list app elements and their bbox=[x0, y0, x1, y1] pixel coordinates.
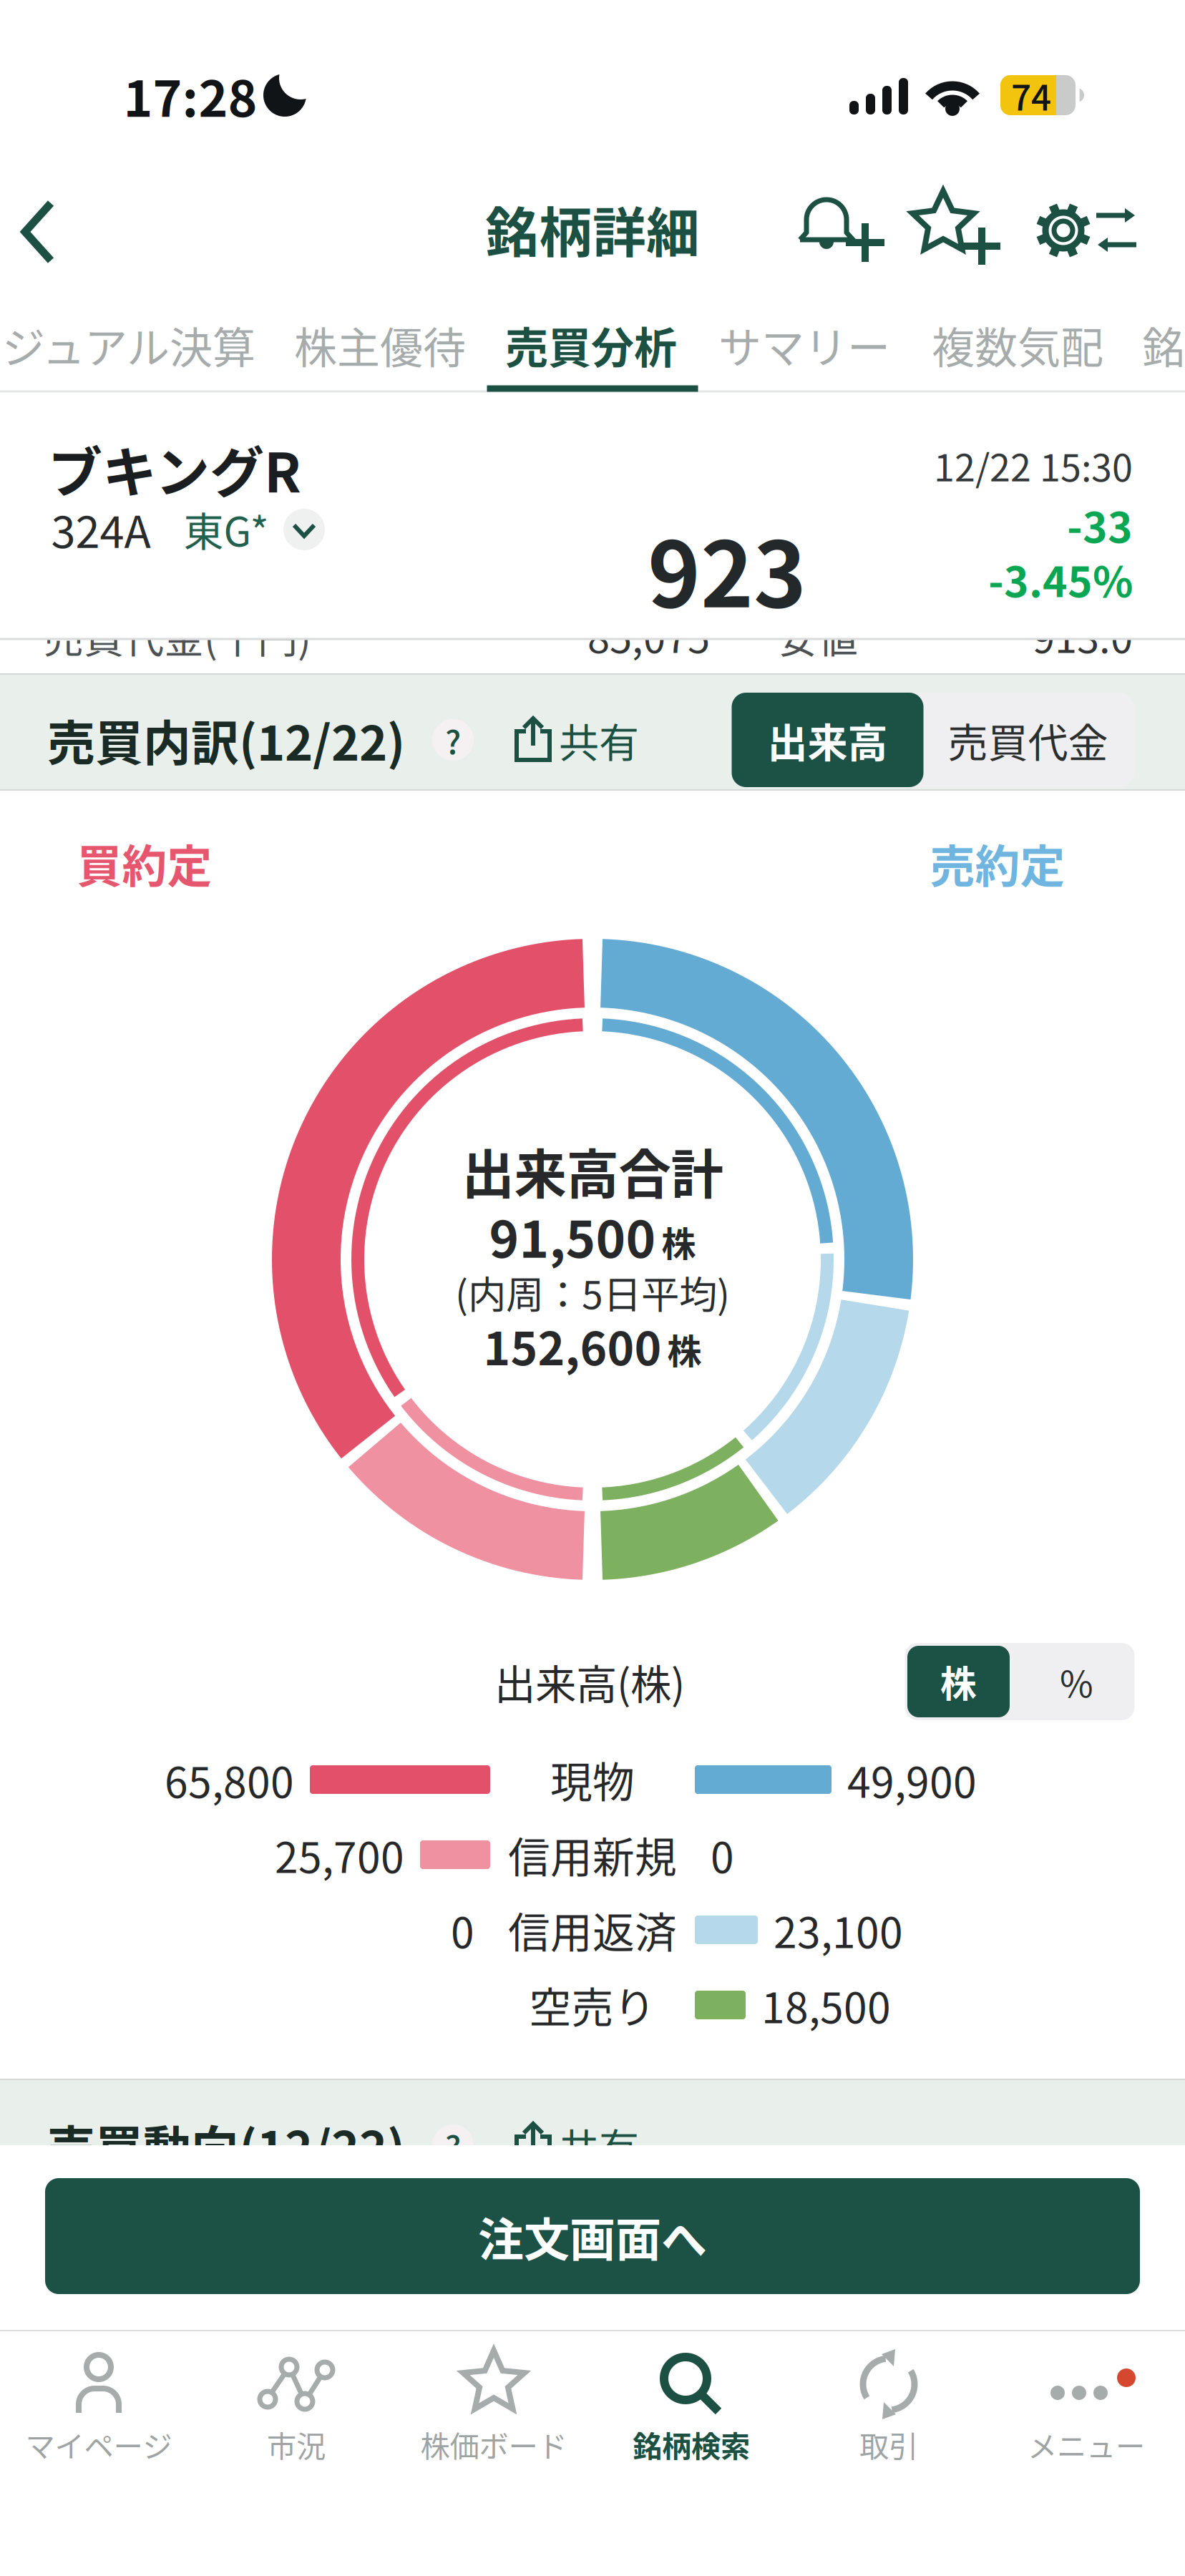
staticText: 923 bbox=[648, 503, 806, 633]
staticText: 12/22 15:30 bbox=[934, 438, 1133, 492]
staticText: ブキングR bbox=[48, 429, 301, 508]
staticText: 85,075 bbox=[587, 606, 710, 664]
staticText: 売買代金(千円) bbox=[44, 606, 311, 664]
staticText: 23,100 bbox=[774, 1899, 903, 1960]
staticText: ビジュアル決算 bbox=[0, 314, 255, 376]
staticText: 信用返済 bbox=[508, 1899, 677, 1960]
button[interactable]: 株価ボード bbox=[395, 2337, 592, 2480]
staticText: 共有 bbox=[559, 711, 639, 769]
staticText: 49,900 bbox=[847, 1749, 977, 1810]
staticText: 空売り bbox=[529, 1975, 656, 2035]
staticText: 株 bbox=[662, 1217, 696, 1266]
staticText: 安値 bbox=[778, 606, 858, 664]
button[interactable]: 取引 bbox=[790, 2337, 987, 2480]
staticText: 信用新規 bbox=[508, 1824, 677, 1885]
staticText: 25,700 bbox=[275, 1824, 404, 1885]
button[interactable]: メニュー bbox=[987, 2337, 1185, 2480]
staticText: 出来高(株) bbox=[494, 1652, 685, 1711]
staticText: 売買分析 bbox=[505, 314, 677, 376]
staticText: 売約定 bbox=[930, 830, 1065, 895]
staticText: 売買内訳(12/22) bbox=[47, 705, 405, 774]
button[interactable]: ヘルプ bbox=[432, 2124, 474, 2166]
staticText: 18,500 bbox=[761, 1975, 891, 2035]
button[interactable]: マイページ bbox=[0, 2337, 197, 2480]
staticText: 売買代金 bbox=[948, 711, 1108, 769]
staticText: 複数気配 bbox=[932, 314, 1103, 376]
staticText: 取引 bbox=[859, 2423, 918, 2466]
button[interactable]: 株主優待 bbox=[294, 314, 466, 376]
button[interactable]: 戻る bbox=[19, 199, 69, 265]
staticText: 株主優待 bbox=[294, 314, 466, 376]
staticText: 株 bbox=[940, 1655, 977, 1708]
staticText: マイページ bbox=[25, 2423, 172, 2466]
button[interactable]: % bbox=[1019, 1646, 1134, 1717]
button[interactable]: ビジュアル決算 bbox=[0, 314, 255, 376]
button[interactable]: 複数気配 bbox=[932, 314, 1103, 376]
staticText: 913.0 bbox=[1033, 606, 1133, 664]
staticText: 出来高 bbox=[767, 711, 888, 769]
staticText: メニュー bbox=[1028, 2423, 1145, 2466]
button[interactable]: 売買分析 bbox=[505, 314, 677, 376]
staticText: 17:28 bbox=[123, 59, 257, 131]
button[interactable]: 注文画面へ bbox=[45, 2178, 1140, 2294]
staticText: -3.45% bbox=[988, 548, 1133, 609]
button[interactable]: 共有 bbox=[515, 2116, 639, 2174]
staticText: % bbox=[1060, 1655, 1093, 1708]
button[interactable]: サマリー bbox=[718, 314, 890, 376]
staticText: 324A bbox=[51, 497, 151, 561]
staticText: 現物 bbox=[550, 1749, 635, 1810]
staticText: 銘柄詳細 bbox=[485, 190, 700, 268]
button[interactable]: 出来高 bbox=[732, 693, 923, 787]
staticText: 注文画面へ bbox=[478, 2203, 707, 2269]
button[interactable]: 株 bbox=[907, 1646, 1010, 1717]
button[interactable]: 通知を追加 bbox=[794, 191, 894, 270]
staticText: 0 bbox=[711, 1824, 734, 1885]
staticText: ? bbox=[445, 2122, 461, 2169]
staticText: 株 bbox=[667, 1324, 702, 1374]
staticText: 91,500 bbox=[489, 1199, 656, 1272]
staticText: 市況 bbox=[267, 2423, 326, 2466]
staticText: 買約定 bbox=[77, 830, 212, 895]
staticText: 東G* bbox=[184, 500, 269, 558]
staticText: 0 bbox=[451, 1899, 474, 1960]
button[interactable]: お気に入りに追加 bbox=[909, 187, 1009, 273]
staticText: 売買動向(12/22) bbox=[47, 2111, 405, 2180]
button[interactable]: 設定 bbox=[1030, 195, 1145, 266]
staticText: 銘柄検索 bbox=[633, 2423, 750, 2466]
button[interactable]: ヘルプ bbox=[432, 719, 474, 761]
staticText: 152,600 bbox=[483, 1312, 662, 1378]
staticText: 株価ボード bbox=[420, 2423, 567, 2466]
button[interactable]: 市況 bbox=[197, 2337, 395, 2480]
staticText: 65,800 bbox=[165, 1749, 294, 1810]
button[interactable]: 市場区分を開く bbox=[283, 509, 325, 550]
staticText: 出来高合計 bbox=[462, 1133, 723, 1209]
staticText: 74 bbox=[1011, 70, 1051, 121]
staticText: -33 bbox=[1067, 494, 1133, 555]
button[interactable]: 共有 bbox=[515, 711, 639, 769]
button[interactable]: 銘柄検索 bbox=[592, 2337, 790, 2480]
staticText: ? bbox=[445, 716, 461, 763]
staticText: 共有 bbox=[559, 2116, 639, 2174]
staticText: サマリー bbox=[718, 314, 890, 376]
button[interactable]: 売買代金 bbox=[924, 693, 1132, 787]
staticText: 銘柄情報 bbox=[1142, 314, 1185, 376]
staticText: (内周：5日平均) bbox=[455, 1265, 730, 1320]
button[interactable]: 銘柄情報 bbox=[1142, 314, 1185, 376]
